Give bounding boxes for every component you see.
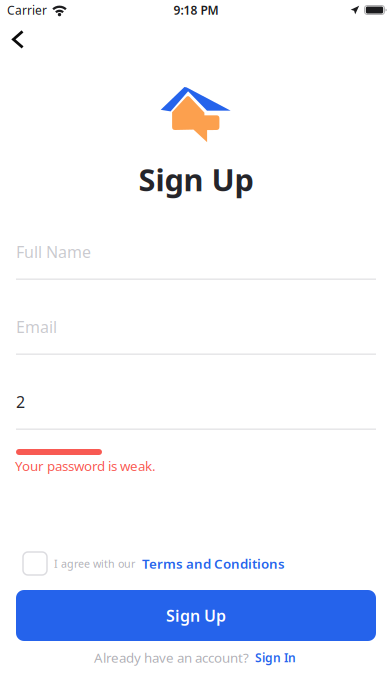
staticText: Email xyxy=(16,316,57,337)
staticText: Sign In xyxy=(255,649,296,665)
staticText: Sign Up xyxy=(138,159,253,200)
staticText: Already have an account? xyxy=(94,649,249,666)
staticText: Terms and Conditions xyxy=(142,555,285,572)
staticText: Full Name xyxy=(16,241,91,262)
staticText: Sign Up xyxy=(166,605,226,626)
staticText: I agree with our xyxy=(54,556,135,571)
button[interactable]: Already have an account? xyxy=(0,650,391,665)
staticText: 9:18 PM xyxy=(173,2,218,18)
staticText: Your password is weak. xyxy=(15,457,156,475)
staticText: Carrier xyxy=(7,2,47,18)
button[interactable]: Back xyxy=(0,16,38,63)
button[interactable]: I agree with our xyxy=(23,552,392,575)
staticText: 2 xyxy=(16,391,25,412)
button[interactable]: Sign Up xyxy=(16,590,376,641)
